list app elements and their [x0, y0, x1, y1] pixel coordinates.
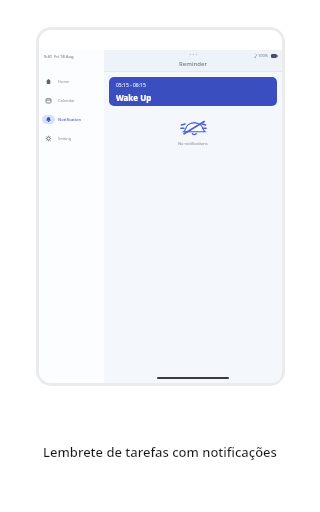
- staticText: Home: [58, 79, 70, 84]
- staticText: Setting: [58, 136, 72, 141]
- button[interactable]: Home: [39, 75, 104, 88]
- staticText: Reminder: [179, 60, 208, 68]
- button[interactable]: 05:15 - 06:15: [109, 77, 277, 106]
- button[interactable]: Settings: [39, 132, 104, 145]
- staticText: Notification: [58, 117, 82, 122]
- button[interactable]: Notification: [39, 113, 104, 126]
- staticText: Wake Up: [116, 92, 152, 103]
- staticText: Calendar: [58, 98, 75, 103]
- staticText: No notifications: [178, 141, 208, 146]
- staticText: 100%: [258, 53, 269, 58]
- staticText: 05:15 - 06:15: [116, 82, 146, 89]
- button[interactable]: Calendar: [39, 94, 104, 107]
- staticText: Lembrete de tarefas com notificações: [0, 443, 320, 461]
- staticText: 9:41 Fri 18 Aug: [44, 54, 74, 59]
